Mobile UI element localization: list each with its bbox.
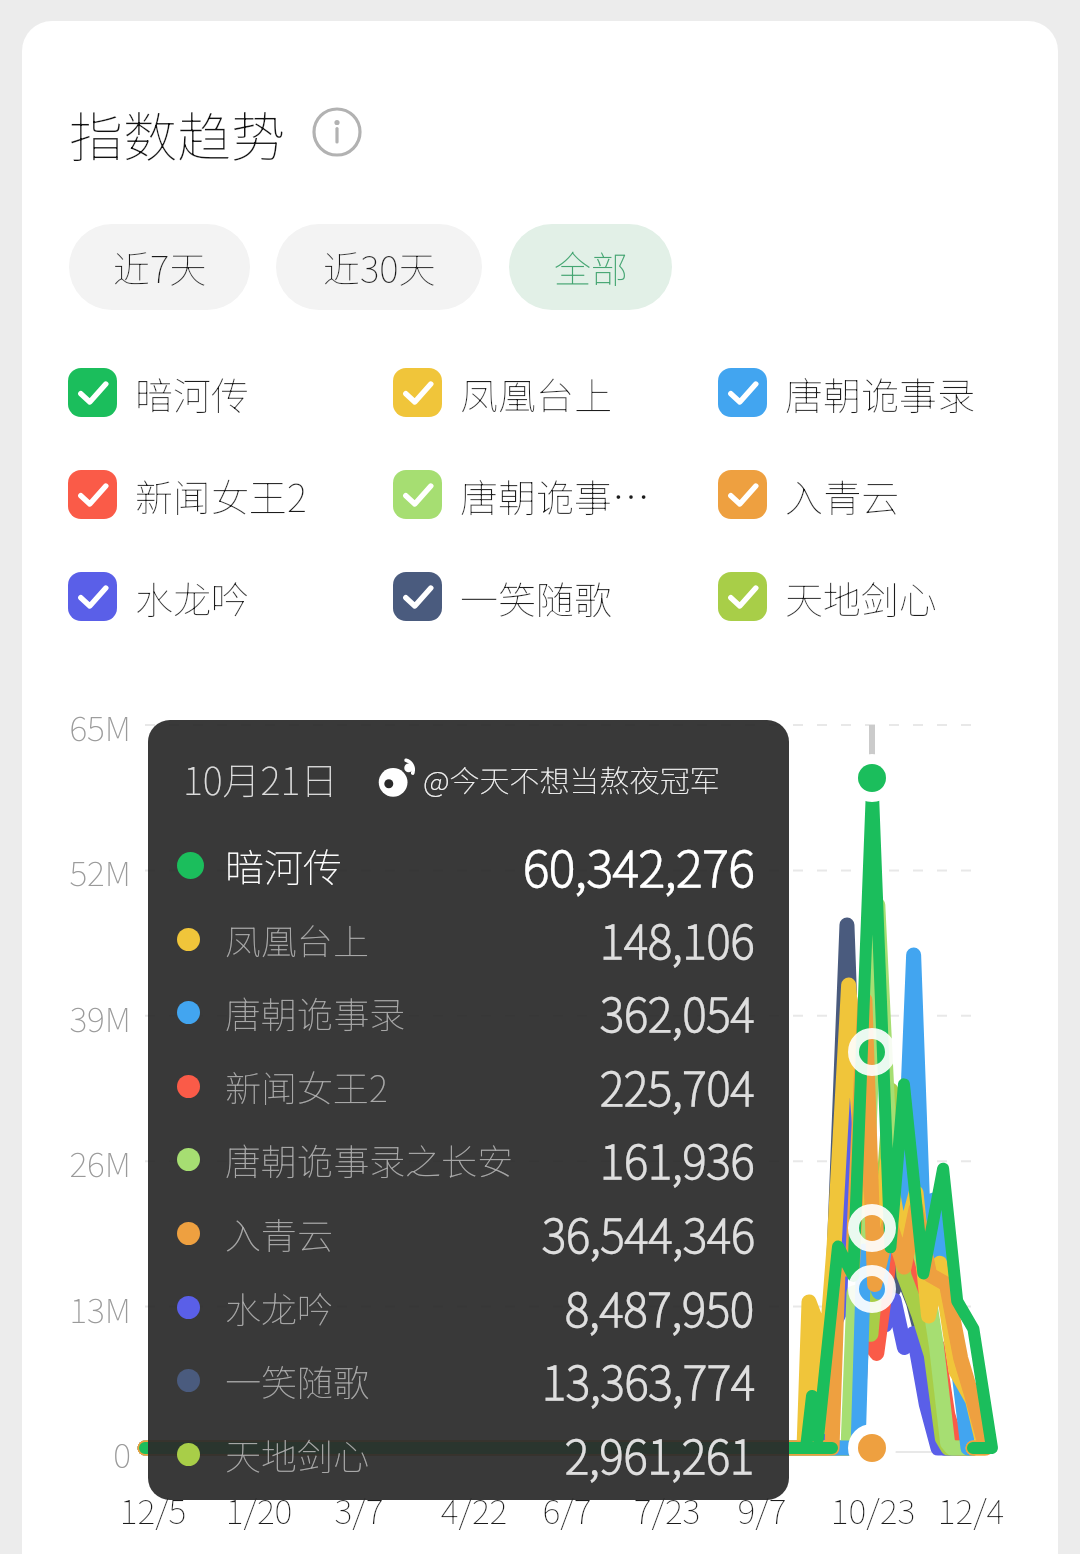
- staticText: 60,342,276: [523, 829, 755, 901]
- staticText: 12/4: [901, 1485, 1041, 1534]
- staticText: 9/7: [692, 1485, 832, 1534]
- staticText: 唐朝诡事…: [460, 468, 651, 520]
- staticText: 148,106: [600, 906, 755, 973]
- button[interactable]: 唐朝诡事…: [393, 468, 718, 520]
- staticText: 唐朝诡事录: [785, 366, 976, 418]
- staticText: 水龙吟: [135, 570, 250, 622]
- staticText: 唐朝诡事录之长安: [225, 1133, 514, 1185]
- button[interactable]: 天地剑心: [718, 570, 1043, 622]
- staticText: 新闻女王2: [135, 468, 307, 520]
- staticText: 10月21日: [183, 751, 339, 806]
- staticText: 2,961,261: [565, 1421, 755, 1488]
- staticText: 6/7: [497, 1485, 637, 1534]
- button[interactable]: 一笑随歌: [393, 570, 718, 622]
- staticText: 天地剑心: [225, 1428, 370, 1480]
- staticText: 10/23: [803, 1485, 943, 1534]
- staticText: 1/20: [189, 1485, 329, 1534]
- button[interactable]: 近30天: [276, 224, 482, 310]
- staticText: 新闻女王2: [225, 1060, 388, 1112]
- staticText: 4/22: [404, 1485, 544, 1534]
- button[interactable]: 入青云: [718, 468, 1043, 520]
- button[interactable]: 水龙吟: [68, 570, 393, 622]
- staticText: 161,936: [600, 1126, 755, 1193]
- button[interactable]: 唐朝诡事录: [718, 366, 1043, 418]
- staticText: 13,363,774: [542, 1347, 755, 1414]
- staticText: 天地剑心: [785, 570, 938, 622]
- button[interactable]: 全部: [509, 224, 672, 310]
- staticText: 65M: [22, 702, 131, 751]
- staticText: 一笑随歌: [460, 570, 613, 622]
- staticText: 水龙吟: [225, 1281, 334, 1333]
- staticText: 8,487,950: [565, 1274, 755, 1341]
- staticText: 0: [22, 1429, 131, 1478]
- staticText: 入青云: [225, 1207, 334, 1259]
- button[interactable]: 暗河传: [68, 366, 393, 418]
- staticText: 39M: [22, 993, 131, 1042]
- staticText: 近30天: [323, 240, 436, 294]
- staticText: @今天不想当熬夜冠军: [423, 757, 720, 800]
- staticText: 一笑随歌: [225, 1354, 370, 1406]
- staticText: 7/23: [597, 1485, 737, 1534]
- staticText: 凤凰台上: [460, 366, 613, 418]
- staticText: 362,054: [600, 979, 755, 1046]
- staticText: 唐朝诡事录: [225, 986, 406, 1038]
- staticText: 12/5: [83, 1485, 223, 1534]
- staticText: 全部: [554, 240, 628, 294]
- staticText: 225,704: [600, 1053, 755, 1120]
- staticText: 26M: [22, 1138, 131, 1187]
- staticText: 52M: [22, 847, 131, 896]
- staticText: 近7天: [113, 240, 207, 294]
- staticText: 暗河传: [135, 366, 250, 418]
- staticText: 入青云: [785, 468, 900, 520]
- staticText: 暗河传: [225, 837, 343, 893]
- button[interactable]: 凤凰台上: [393, 366, 718, 418]
- button[interactable]: 新闻女王2: [68, 468, 393, 520]
- staticText: 13M: [22, 1284, 131, 1333]
- staticText: 凤凰台上: [225, 913, 370, 965]
- staticText: 指数趋势: [69, 94, 285, 170]
- button[interactable]: 近7天: [69, 224, 250, 310]
- staticText: 36,544,346: [542, 1200, 755, 1267]
- button[interactable]: 说明: [313, 108, 361, 156]
- staticText: 3/7: [289, 1485, 429, 1534]
